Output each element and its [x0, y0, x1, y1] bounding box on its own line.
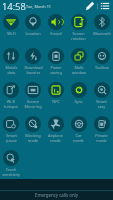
button[interactable]: Smart pause: [0, 114, 22, 148]
staticText: Blocking mode: [25, 133, 41, 143]
button[interactable]: Bluetooth: [90, 12, 113, 46]
button[interactable]: Multi window: [67, 46, 90, 80]
button[interactable]: Screen Mirroring: [22, 80, 44, 114]
button[interactable]: Touch sensitivity: [0, 148, 22, 182]
staticText: Download booster: [24, 65, 43, 75]
staticText: Multi window: [72, 65, 86, 75]
button[interactable]: Sound: [44, 12, 67, 46]
staticText: Sound: [50, 31, 62, 36]
button[interactable]: Power saving: [44, 46, 67, 80]
staticText: Airplane mode: [48, 133, 63, 143]
staticText: Bluetooth: [93, 31, 111, 36]
button[interactable]: Location: [22, 12, 44, 46]
staticText: 14:58: [2, 0, 26, 12]
staticText: Screen rotation: [71, 31, 86, 41]
staticText: Smart pause: [6, 133, 17, 143]
button[interactable]: Wi-Fi hotspot: [0, 80, 22, 114]
button[interactable]: Private mode: [90, 114, 113, 148]
button[interactable]: Car mode: [67, 114, 90, 148]
staticText: Emergency calls only: [35, 192, 78, 198]
staticText: Touch sensitivity: [2, 167, 20, 177]
button[interactable]: Download booster: [22, 46, 44, 80]
staticText: Smart stay: [96, 99, 107, 109]
staticText: Mobile data: [5, 65, 18, 75]
staticText: NFC: [52, 99, 60, 104]
staticText: Wi-Fi hotspot: [4, 99, 18, 109]
button[interactable]: Screen rotation: [67, 12, 90, 46]
button[interactable]: Toolbox: [90, 46, 113, 80]
staticText: Car mode: [73, 133, 84, 143]
button[interactable]: Blocking mode: [22, 114, 44, 148]
staticText: Location: [25, 31, 41, 36]
staticText: Tue, March 11: [26, 4, 51, 9]
button[interactable]: Sync: [67, 80, 90, 114]
staticText: Wi-Fi: [7, 31, 16, 36]
button[interactable]: Airplane mode: [44, 114, 67, 148]
staticText: Private mode: [95, 133, 108, 143]
staticText: Sync: [74, 99, 83, 104]
staticText: Screen Mirroring: [24, 99, 42, 109]
button[interactable]: Smart stay: [90, 80, 113, 114]
button[interactable]: Mobile data: [0, 46, 22, 80]
button[interactable]: NFC: [44, 80, 67, 114]
button[interactable]: Settings list: [99, 0, 111, 12]
staticText: Toolbox: [95, 65, 109, 70]
staticText: Power saving: [50, 65, 62, 75]
button[interactable]: Edit: [84, 0, 96, 12]
button[interactable]: Wi-Fi: [0, 12, 22, 46]
